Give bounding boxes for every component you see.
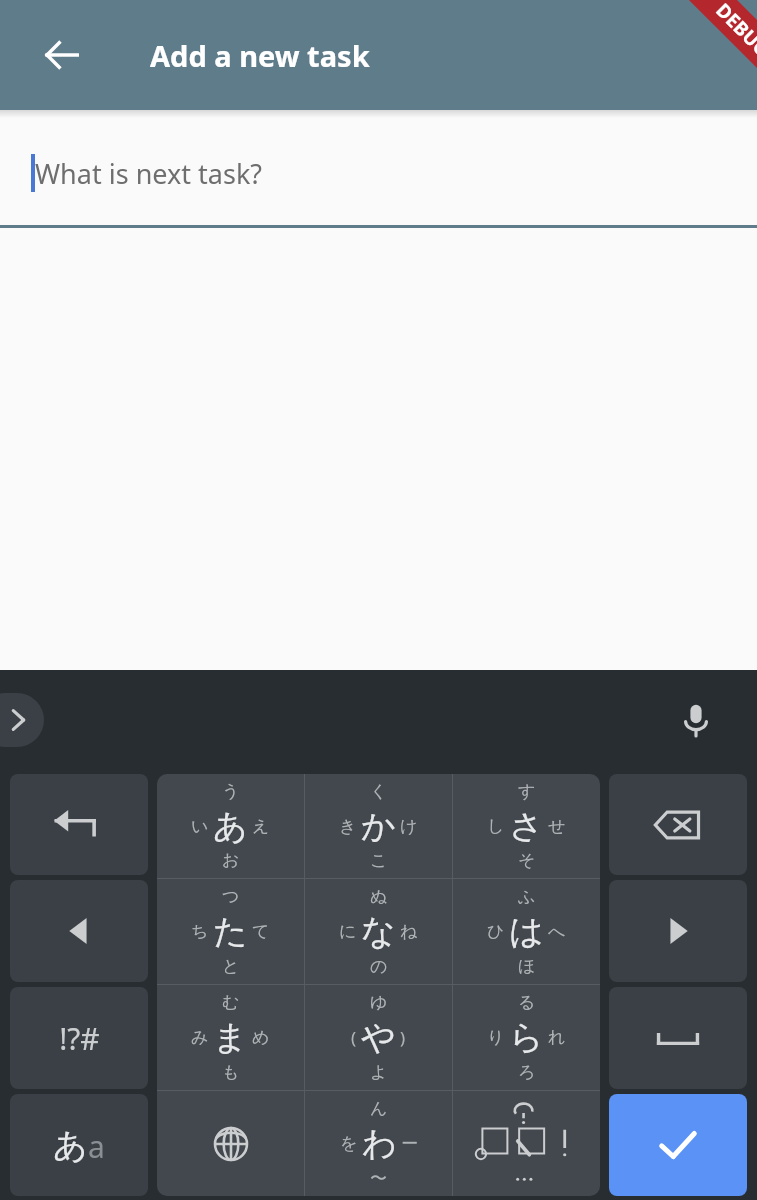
staticText: み [191, 1027, 209, 1048]
button[interactable]: Switch language [157, 1091, 304, 1196]
staticText: 〜 [370, 1168, 387, 1189]
button[interactable]: Punctuation [453, 1091, 600, 1196]
staticText: そ [518, 850, 536, 871]
staticText: ね [400, 921, 418, 942]
staticText: え [252, 816, 270, 837]
staticText: ふ [518, 886, 536, 907]
staticText: ) [400, 1026, 406, 1049]
staticText: う [222, 781, 240, 802]
staticText: あ [213, 805, 248, 848]
button[interactable]: ぬ [305, 879, 452, 984]
staticText: ほ [518, 956, 536, 977]
button[interactable]: る [453, 985, 600, 1090]
button[interactable]: ん [305, 1091, 452, 1196]
staticText: ひ [487, 921, 505, 942]
button[interactable]: Space [609, 987, 747, 1089]
staticText: れ [548, 1027, 566, 1048]
staticText: か [361, 805, 396, 848]
staticText: ゆ [370, 992, 388, 1013]
staticText: き [339, 816, 357, 837]
staticText: ら [509, 1016, 544, 1059]
button[interactable]: す [453, 774, 600, 878]
button[interactable]: Return [10, 774, 148, 875]
button[interactable]: ふ [453, 879, 600, 984]
button[interactable]: Back [26, 19, 98, 91]
staticText: !?# [59, 1018, 100, 1059]
staticText: よ [370, 1062, 388, 1083]
button[interactable]: !?# [10, 987, 148, 1089]
button[interactable]: Cursor left [10, 880, 148, 982]
staticText: け [400, 816, 418, 837]
staticText: ま [213, 1016, 248, 1059]
staticText: ち [191, 921, 209, 942]
staticText: こ [370, 850, 388, 871]
staticText: む [222, 992, 240, 1013]
staticText: あ [53, 1124, 88, 1167]
button[interactable]: く [305, 774, 452, 878]
staticText: つ [222, 886, 240, 907]
staticText: り [487, 1027, 505, 1048]
staticText: ろ [518, 1062, 536, 1083]
staticText: a [88, 1126, 105, 1167]
staticText: た [213, 910, 248, 953]
staticText: も [222, 1062, 240, 1083]
button[interactable]: Enter [609, 1094, 747, 1196]
button[interactable]: つ [157, 879, 304, 984]
staticText: や [361, 1016, 396, 1059]
staticText: い [191, 816, 209, 837]
staticText: What is next task? [35, 155, 263, 192]
staticText: お [222, 850, 240, 871]
button[interactable]: Voice input [665, 689, 727, 751]
staticText: を [340, 1133, 358, 1154]
staticText: ( [351, 1026, 357, 1049]
staticText: わ [362, 1122, 397, 1165]
staticText: て [252, 921, 270, 942]
button[interactable]: う [157, 774, 304, 878]
button[interactable]: Backspace [609, 774, 747, 875]
staticText: し [487, 816, 505, 837]
staticText: ん [370, 1098, 388, 1119]
staticText: ぬ [370, 886, 388, 907]
staticText: る [518, 992, 536, 1013]
staticText: に [339, 921, 357, 942]
staticText: と [222, 956, 240, 977]
button[interactable]: Expand toolbar [0, 693, 44, 747]
button[interactable]: ゆ [305, 985, 452, 1090]
staticText: な [361, 910, 396, 953]
staticText: へ [548, 921, 566, 942]
staticText: さ [509, 805, 544, 848]
button[interactable]: あ [10, 1094, 148, 1196]
staticText: く [370, 781, 388, 802]
button[interactable]: む [157, 985, 304, 1090]
staticText: せ [548, 816, 566, 837]
staticText: ー [401, 1133, 418, 1154]
staticText: Add a new task [150, 36, 370, 75]
staticText: の [370, 956, 388, 977]
staticText: す [518, 781, 536, 802]
button[interactable]: Cursor right [609, 880, 747, 982]
staticText: DEBUG [710, 0, 757, 63]
staticText: め [252, 1027, 270, 1048]
staticText: は [509, 910, 544, 953]
